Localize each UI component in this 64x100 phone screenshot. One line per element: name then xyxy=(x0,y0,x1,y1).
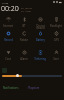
button[interactable]: Rotate xyxy=(16,31,32,42)
button[interactable]: Record xyxy=(0,31,16,42)
staticText: Do not disturb xyxy=(36,24,45,29)
staticText: 12:20 xyxy=(2,1,9,4)
staticText: Cast xyxy=(5,57,11,61)
button[interactable]: Brightness xyxy=(2,73,62,78)
button[interactable]: User xyxy=(48,50,64,61)
staticText: Tethering xyxy=(34,57,46,61)
staticText: Flashlight xyxy=(50,24,62,28)
button[interactable]: Battery xyxy=(32,31,48,42)
staticText: 00:20 xyxy=(1,4,19,14)
button[interactable]: BT xyxy=(16,17,32,28)
button[interactable]: Cast xyxy=(0,50,16,61)
button[interactable]: Tethering xyxy=(32,50,48,61)
staticText: Fri, Jan 20 xyxy=(21,6,32,9)
button[interactable]: Do not disturb xyxy=(32,17,48,29)
staticText: GPS xyxy=(54,38,59,42)
button[interactable]: Internet xyxy=(0,17,16,28)
staticText: Notifications xyxy=(3,86,19,90)
staticText: Record xyxy=(4,38,13,42)
staticText: Internet xyxy=(3,24,13,28)
staticText: 24° Clear xyxy=(21,9,32,12)
staticText: Alarm xyxy=(20,57,28,61)
button[interactable] xyxy=(2,67,62,74)
staticText: User xyxy=(53,57,59,61)
staticText: Battery xyxy=(36,38,45,42)
button[interactable]: GPS xyxy=(48,31,64,42)
staticText: Rotate xyxy=(20,38,28,42)
staticText: Playstore xyxy=(28,86,40,90)
button[interactable]: Flashlight xyxy=(48,17,64,28)
button[interactable]: Alarm xyxy=(16,50,32,61)
staticText: BT xyxy=(22,24,26,28)
